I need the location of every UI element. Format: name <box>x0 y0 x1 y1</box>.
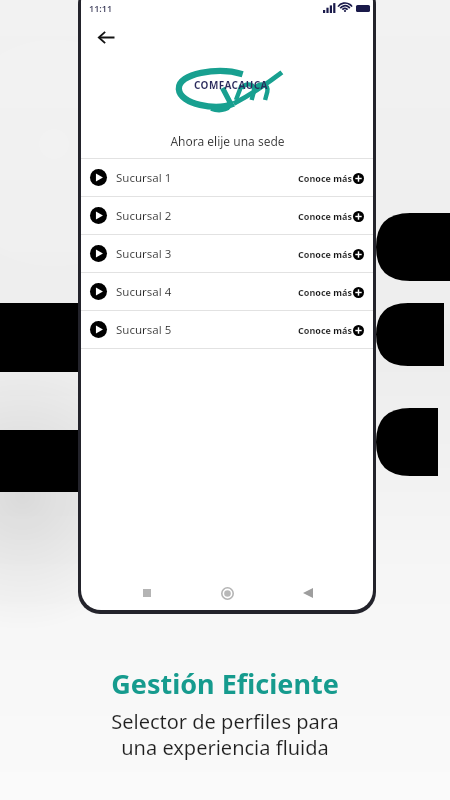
button[interactable]: Sucursal 5 <box>81 311 373 348</box>
staticText: Sucursal 5 <box>116 322 172 338</box>
staticText: COMFACAUCA <box>194 78 268 92</box>
button[interactable]: Sucursal 2 <box>81 197 373 234</box>
staticText: Selector de perfiles para una experienci… <box>111 708 339 760</box>
staticText: Sucursal 1 <box>116 170 172 186</box>
staticText: Conoce más <box>298 286 352 298</box>
staticText: Conoce más <box>298 324 352 336</box>
button[interactable]: Sucursal 4 <box>81 273 373 310</box>
button[interactable]: Back <box>293 578 323 608</box>
button[interactable]: Sucursal 3 <box>81 235 373 272</box>
staticText: Sucursal 4 <box>116 284 172 300</box>
staticText: Conoce más <box>298 248 352 260</box>
button[interactable]: Back <box>91 22 121 52</box>
button[interactable]: Recents <box>132 578 162 608</box>
staticText: Ahora elije una sede <box>170 133 285 149</box>
staticText: Sucursal 2 <box>116 208 172 224</box>
button[interactable]: Home <box>212 578 242 608</box>
staticText: Conoce más <box>298 172 352 184</box>
staticText: Gestión Eficiente <box>111 665 339 702</box>
staticText: 11:11 <box>89 2 113 14</box>
staticText: Conoce más <box>298 210 352 222</box>
button[interactable]: Sucursal 1 <box>81 159 373 196</box>
staticText: Sucursal 3 <box>116 246 172 262</box>
